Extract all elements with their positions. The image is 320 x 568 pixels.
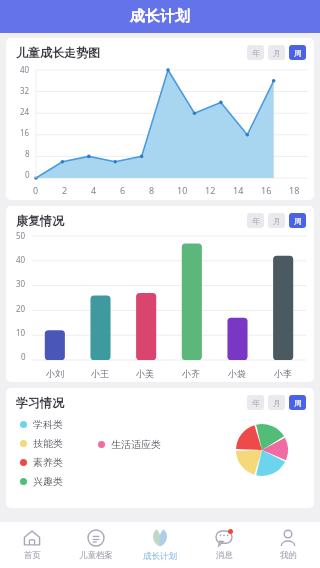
staticText: 10 bbox=[177, 184, 188, 196]
staticText: 学科类 bbox=[33, 418, 63, 431]
button[interactable]: Messages bbox=[192, 522, 256, 568]
staticText: 8 bbox=[25, 148, 30, 159]
staticText: 成长计划 bbox=[143, 551, 177, 562]
button[interactable]: 月 bbox=[268, 395, 285, 410]
staticText: 康复情况 bbox=[16, 213, 64, 228]
staticText: 首页 bbox=[24, 550, 41, 561]
button[interactable]: 年 bbox=[247, 395, 264, 410]
staticText: 18 bbox=[289, 184, 300, 196]
button[interactable]: 年 bbox=[247, 213, 264, 228]
button[interactable]: 技能类 bbox=[20, 437, 63, 450]
button[interactable]: 月 bbox=[268, 213, 285, 228]
staticText: 0 bbox=[33, 184, 39, 196]
staticText: 消息 bbox=[216, 550, 233, 561]
button[interactable]: 生活适应类 bbox=[98, 438, 161, 451]
staticText: 成长计划 bbox=[130, 7, 190, 26]
button[interactable]: 周 bbox=[289, 395, 306, 410]
button[interactable]: Profile bbox=[256, 522, 320, 568]
staticText: 小袋 bbox=[228, 368, 246, 379]
staticText: 小王 bbox=[91, 368, 109, 379]
staticText: 儿童档案 bbox=[79, 550, 113, 561]
staticText: 周 bbox=[294, 398, 302, 408]
staticText: 14 bbox=[233, 184, 244, 196]
staticText: 兴趣类 bbox=[33, 475, 63, 488]
staticText: 20 bbox=[16, 303, 26, 314]
staticText: 16 bbox=[261, 184, 272, 196]
staticText: 8 bbox=[149, 184, 155, 196]
staticText: 小刘 bbox=[46, 368, 64, 379]
staticText: 年 bbox=[252, 48, 260, 58]
staticText: 小李 bbox=[274, 368, 292, 379]
staticText: 素养类 bbox=[33, 456, 63, 469]
staticText: 生活适应类 bbox=[111, 438, 161, 451]
button[interactable]: 月 bbox=[268, 45, 285, 60]
button[interactable]: Child records bbox=[64, 522, 128, 568]
staticText: 24 bbox=[20, 106, 30, 117]
staticText: 30 bbox=[16, 278, 26, 289]
button[interactable]: Growth plan bbox=[128, 522, 192, 568]
staticText: 小齐 bbox=[182, 368, 200, 379]
staticText: 儿童成长走势图 bbox=[16, 45, 100, 60]
staticText: 32 bbox=[20, 85, 30, 96]
button[interactable]: 兴趣类 bbox=[20, 475, 63, 488]
staticText: 学习情况 bbox=[16, 395, 64, 410]
button[interactable]: Home bbox=[0, 522, 64, 568]
staticText: 6 bbox=[120, 184, 126, 196]
staticText: 0 bbox=[21, 351, 26, 362]
button[interactable]: 年 bbox=[247, 45, 264, 60]
staticText: 技能类 bbox=[33, 437, 63, 450]
staticText: 0 bbox=[25, 169, 30, 180]
staticText: 年 bbox=[252, 398, 260, 408]
button[interactable]: 学科类 bbox=[20, 418, 63, 431]
staticText: 12 bbox=[205, 184, 216, 196]
staticText: 50 bbox=[16, 230, 26, 241]
staticText: 4 bbox=[91, 184, 97, 196]
staticText: 周 bbox=[294, 48, 302, 58]
staticText: 月 bbox=[273, 48, 281, 58]
staticText: 40 bbox=[16, 254, 26, 265]
staticText: 2 bbox=[62, 184, 68, 196]
staticText: 我的 bbox=[280, 550, 297, 561]
button[interactable]: 周 bbox=[289, 45, 306, 60]
button[interactable]: 周 bbox=[289, 213, 306, 228]
staticText: 10 bbox=[16, 327, 26, 338]
staticText: 小美 bbox=[136, 368, 154, 379]
staticText: 月 bbox=[273, 216, 281, 226]
staticText: 月 bbox=[273, 398, 281, 408]
staticText: 16 bbox=[20, 127, 30, 138]
button[interactable]: 素养类 bbox=[20, 456, 63, 469]
staticText: 年 bbox=[252, 216, 260, 226]
staticText: 40 bbox=[20, 64, 30, 75]
staticText: 周 bbox=[294, 216, 302, 226]
